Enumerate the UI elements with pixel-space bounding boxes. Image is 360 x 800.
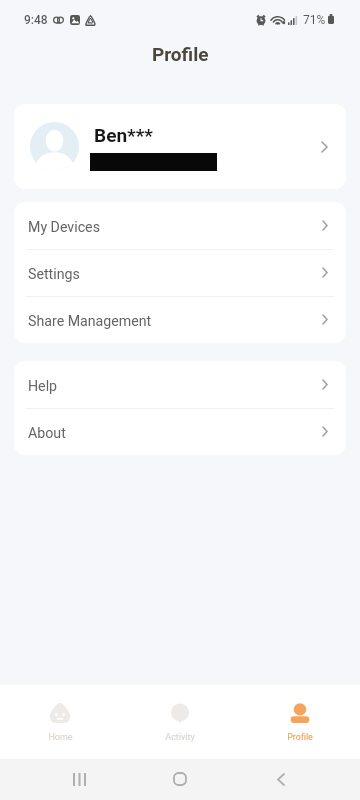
button[interactable]: Profile [240, 685, 360, 759]
button[interactable]: Home [160, 759, 200, 799]
button[interactable]: Home [0, 685, 120, 759]
button[interactable]: Share Management [14, 296, 346, 343]
staticText: 9:48 [24, 13, 48, 27]
button[interactable]: My Devices [14, 202, 346, 249]
button[interactable]: Help [14, 361, 346, 408]
staticText: Ben*** [94, 124, 153, 146]
staticText: Profile [152, 43, 209, 65]
staticText: Activity [165, 732, 195, 743]
staticText: Profile [287, 732, 313, 743]
button[interactable]: About [14, 408, 346, 455]
staticText: Settings [28, 266, 80, 283]
staticText: 71% [303, 13, 326, 27]
staticText: Home [48, 732, 73, 743]
button[interactable]: Ben*** [14, 104, 346, 189]
staticText: About [28, 425, 66, 442]
staticText: Help [28, 378, 58, 395]
button[interactable]: Recent apps [59, 759, 99, 799]
button[interactable]: Activity [120, 685, 240, 759]
staticText: My Devices [28, 219, 100, 236]
button[interactable]: Back [261, 759, 301, 799]
button[interactable]: Settings [14, 249, 346, 296]
staticText: Share Management [28, 313, 152, 330]
